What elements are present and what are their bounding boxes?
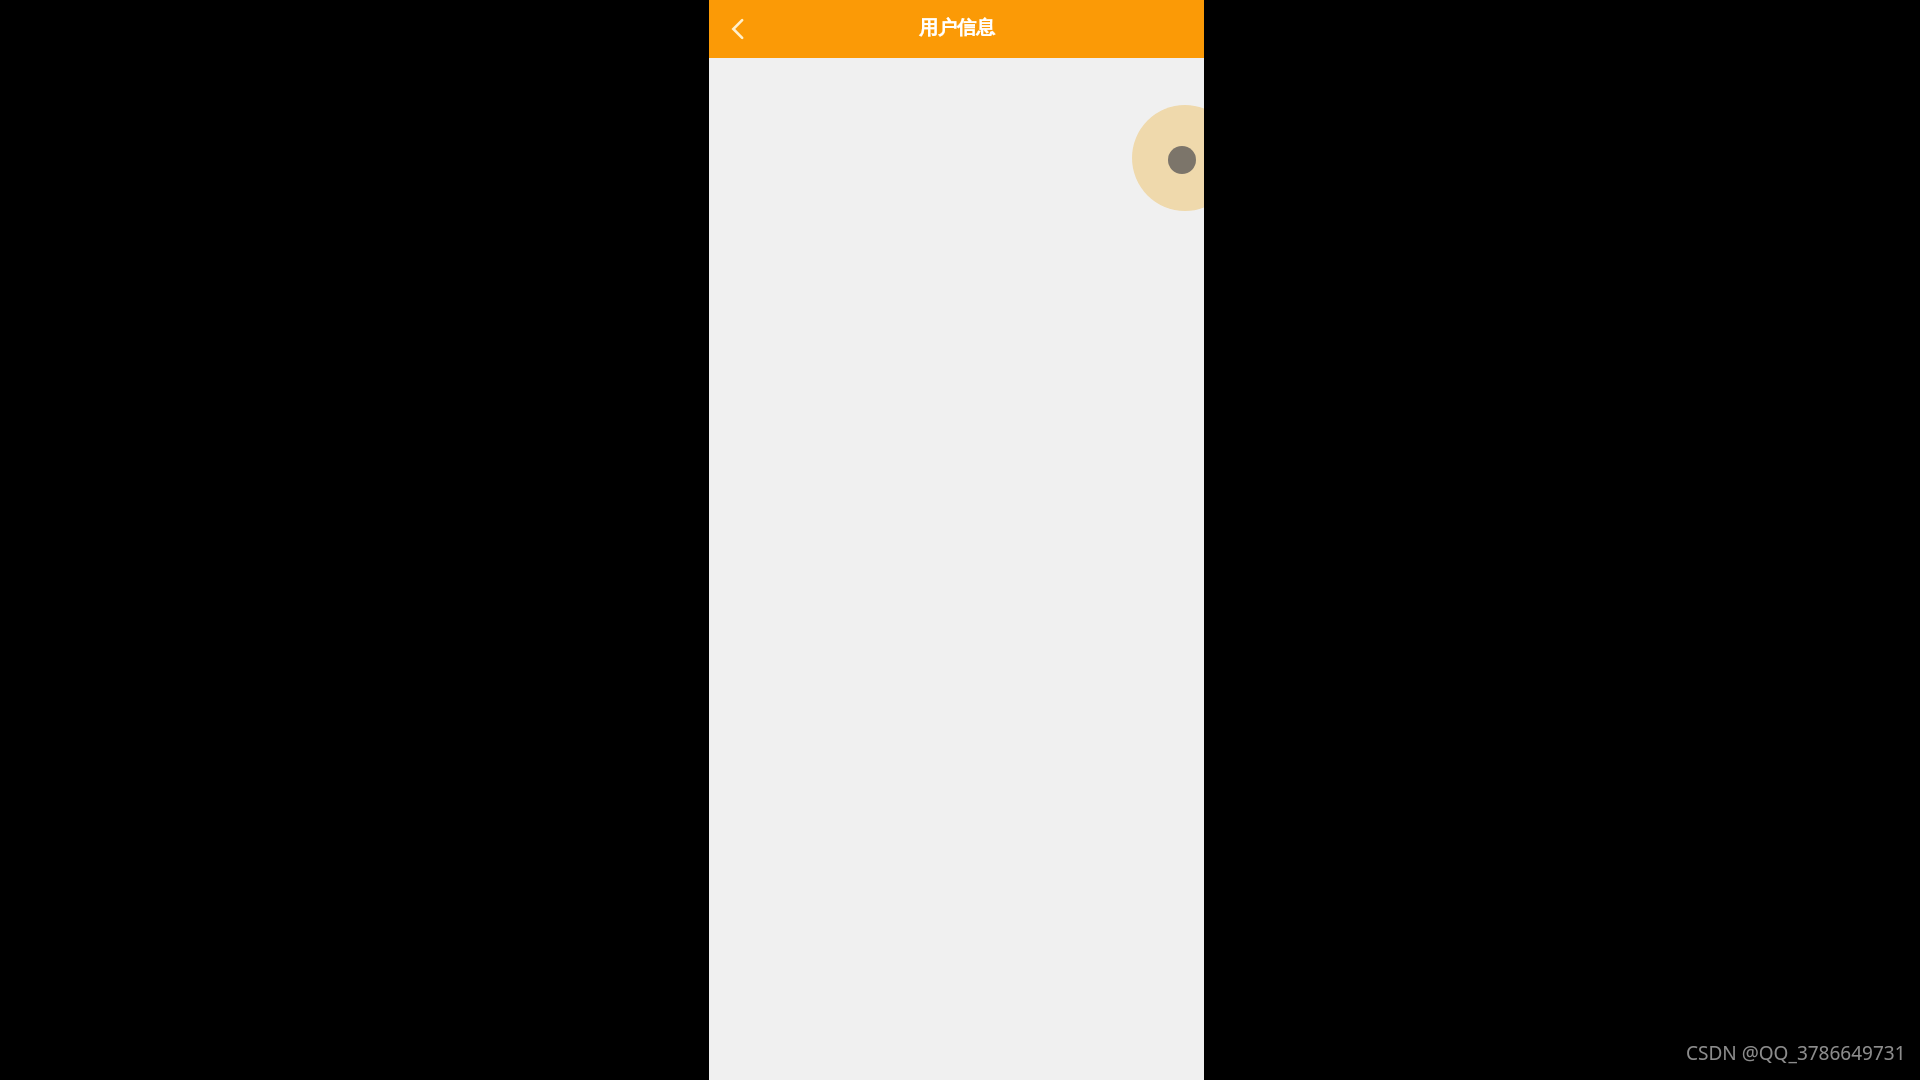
button[interactable]: Back <box>709 0 767 58</box>
staticText: CSDN @QQ_3786649731 <box>1686 1040 1906 1066</box>
staticText: 用户信息 <box>919 16 995 40</box>
